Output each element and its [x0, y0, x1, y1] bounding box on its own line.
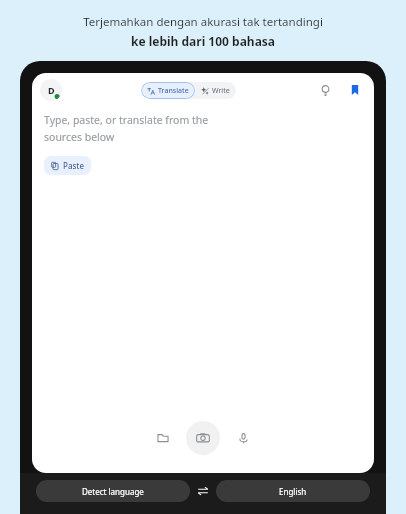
button[interactable]: Camera	[186, 421, 220, 455]
button[interactable]: Ideas	[316, 81, 334, 99]
staticText: Terjemahkan dengan akurasi tak tertandin…	[0, 14, 406, 30]
staticText: Translate	[158, 86, 189, 96]
button[interactable]: Saved	[346, 81, 364, 99]
button[interactable]: Gallery	[150, 425, 176, 451]
button[interactable]: Detect language	[36, 480, 190, 502]
button[interactable]: Write	[195, 82, 236, 99]
button[interactable]: Translate	[141, 82, 195, 99]
staticText: Detect language	[82, 486, 144, 497]
staticText: Type, paste, or translate from the	[44, 113, 209, 127]
button[interactable]: Paste	[44, 156, 91, 175]
staticText: ke lebih dari 100 bahasa	[0, 33, 406, 49]
button[interactable]: Swap languages	[190, 480, 216, 502]
button[interactable]: Microphone	[230, 425, 256, 451]
button[interactable]: English	[216, 480, 370, 502]
button[interactable]: Account	[40, 79, 62, 101]
staticText: Paste	[63, 160, 84, 171]
staticText: D	[48, 84, 55, 96]
staticText: sources below	[44, 130, 115, 144]
staticText: Write	[212, 86, 230, 96]
staticText: English	[279, 486, 307, 497]
